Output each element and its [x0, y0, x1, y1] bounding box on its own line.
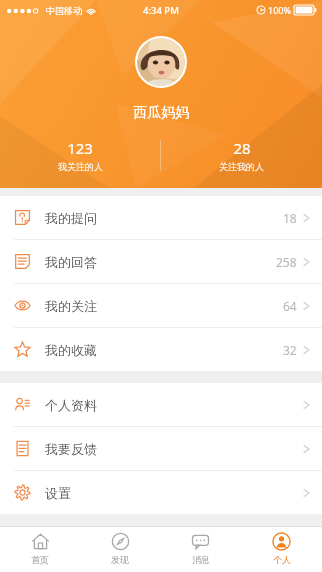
button[interactable]: Profile photo: [137, 38, 185, 86]
button[interactable]: 123: [0, 138, 160, 172]
staticText: 4:34 PM: [143, 4, 179, 17]
button[interactable]: 设置: [0, 471, 322, 514]
staticText: 首页: [31, 554, 49, 565]
staticText: 关注我的人: [219, 161, 264, 172]
button[interactable]: 消息: [160, 527, 241, 572]
staticText: 发现: [111, 554, 129, 565]
button[interactable]: 个人: [241, 527, 322, 572]
staticText: 32: [283, 342, 297, 358]
staticText: 设置: [45, 485, 71, 501]
staticText: 64: [283, 298, 297, 314]
staticText: 中国移动: [46, 5, 82, 16]
staticText: 我的关注: [45, 298, 97, 314]
button[interactable]: 首页: [0, 527, 80, 572]
staticText: 我要反馈: [45, 441, 97, 457]
staticText: 个人: [273, 554, 291, 565]
staticText: 123: [67, 138, 93, 158]
staticText: 258: [276, 254, 297, 270]
staticText: 消息: [192, 554, 210, 565]
button[interactable]: 28: [161, 138, 322, 172]
button[interactable]: 我的关注: [0, 284, 322, 327]
staticText: 个人资料: [45, 397, 97, 413]
staticText: 100%: [268, 4, 291, 16]
staticText: 我的回答: [45, 254, 97, 270]
staticText: 西瓜妈妈: [133, 104, 189, 122]
button[interactable]: 我要反馈: [0, 427, 322, 470]
staticText: 18: [283, 210, 297, 226]
button[interactable]: 发现: [80, 527, 160, 572]
button[interactable]: 我的收藏: [0, 328, 322, 371]
staticText: 我关注的人: [58, 161, 103, 172]
button[interactable]: 我的回答: [0, 240, 322, 283]
staticText: 我的提问: [45, 210, 97, 226]
staticText: 28: [233, 138, 251, 158]
staticText: 我的收藏: [45, 342, 97, 358]
button[interactable]: 个人资料: [0, 383, 322, 426]
button[interactable]: 我的提问: [0, 196, 322, 239]
